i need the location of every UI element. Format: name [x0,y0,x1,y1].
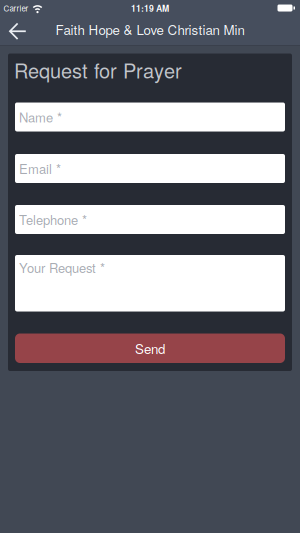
staticText: Send [135,339,165,358]
staticText: 11:19 AM [131,2,169,14]
button[interactable]: Name * [15,102,285,131]
button[interactable]: Email * [15,154,285,183]
staticText: Email * [19,159,61,178]
staticText: Carrier [3,2,28,14]
button[interactable]: Send [15,333,285,363]
staticText: Your Request * [19,258,105,277]
staticText: Name * [19,108,62,126]
button[interactable]: Telephone * [15,205,285,234]
staticText: Telephone * [19,210,87,229]
staticText: Faith Hope & Love Christian Min [55,20,244,39]
staticText: Request for Prayer [14,55,182,84]
button[interactable]: Your Request * [15,255,285,311]
button[interactable]: Back [0,20,26,44]
